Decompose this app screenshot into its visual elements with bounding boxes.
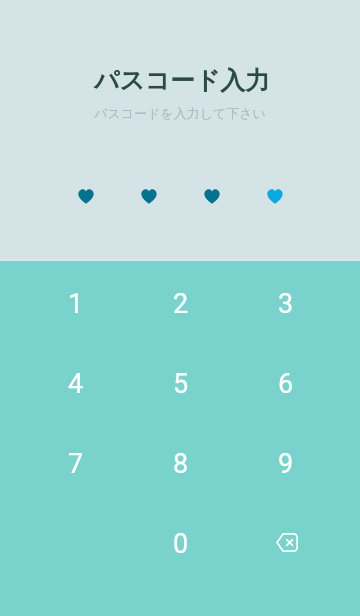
staticText: 7 (68, 448, 84, 480)
staticText: パスコード入力 (94, 65, 270, 96)
staticText: 4 (68, 368, 84, 400)
button[interactable]: 4 (23, 342, 128, 422)
staticText: 2 (173, 288, 189, 320)
staticText: 9 (278, 448, 294, 480)
button[interactable]: 2 (128, 262, 233, 342)
button[interactable]: 3 (233, 262, 338, 342)
button[interactable]: 5 (128, 342, 233, 422)
staticText: 5 (173, 368, 189, 400)
button[interactable]: 0 (128, 502, 233, 582)
staticText: 0 (173, 528, 189, 560)
button[interactable]: 8 (128, 422, 233, 502)
staticText: パスコードを入力して下さい (94, 105, 266, 121)
staticText: 8 (173, 448, 189, 480)
staticText: 3 (278, 288, 294, 320)
staticText: 6 (278, 368, 294, 400)
other: Backspace (266, 522, 306, 562)
staticText: 1 (68, 288, 84, 320)
button[interactable]: 7 (23, 422, 128, 502)
button[interactable]: 1 (23, 262, 128, 342)
button[interactable]: Backspace (233, 502, 338, 582)
button[interactable]: 6 (233, 342, 338, 422)
button[interactable]: 9 (233, 422, 338, 502)
